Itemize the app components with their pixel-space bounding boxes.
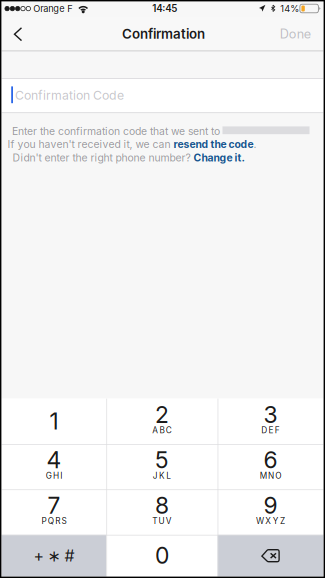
staticText: 6 bbox=[263, 446, 277, 474]
button[interactable]: Done bbox=[267, 17, 323, 50]
button[interactable]: 5 bbox=[106, 444, 218, 489]
button[interactable]: Confirmation Code bbox=[15, 88, 124, 103]
staticText: resend the code bbox=[173, 138, 253, 150]
button[interactable]: Change it. bbox=[193, 151, 244, 164]
staticText bbox=[190, 151, 193, 164]
staticText: 5 bbox=[155, 446, 169, 474]
button[interactable]: Back bbox=[2, 18, 44, 51]
staticText: 2 bbox=[155, 401, 169, 428]
staticText: Change it. bbox=[193, 151, 244, 164]
staticText: . bbox=[253, 138, 256, 150]
staticText bbox=[170, 138, 173, 150]
button[interactable]: 0 bbox=[106, 535, 218, 577]
button[interactable]: 9 bbox=[218, 489, 323, 535]
staticText: 0 bbox=[155, 542, 169, 569]
staticText: 14:45 bbox=[152, 3, 177, 14]
staticText: Orange F bbox=[33, 3, 72, 14]
staticText: Confirmation bbox=[122, 26, 205, 42]
staticText: TUV bbox=[149, 516, 175, 526]
staticText: + ∗ # bbox=[33, 546, 74, 565]
button[interactable]: Delete bbox=[218, 535, 323, 577]
staticText: WXYZ bbox=[253, 516, 288, 526]
button[interactable]: 2 bbox=[106, 399, 218, 444]
button[interactable]: 8 bbox=[106, 489, 218, 535]
staticText: Didn't enter the right phone number? bbox=[12, 151, 190, 164]
staticText: 7 bbox=[47, 491, 60, 519]
staticText: Confirmation Code bbox=[15, 88, 124, 103]
staticText: 4 bbox=[46, 446, 61, 474]
staticText: If you haven't received it, we can bbox=[7, 138, 170, 150]
staticText: 3 bbox=[263, 401, 277, 428]
button[interactable]: resend the code bbox=[173, 138, 253, 150]
staticText: 1 bbox=[49, 407, 58, 435]
button[interactable]: 6 bbox=[218, 444, 323, 489]
staticText: PQRS bbox=[38, 516, 70, 526]
staticText: Done bbox=[280, 26, 311, 42]
staticText: MNO bbox=[256, 471, 285, 481]
button[interactable]: 1 bbox=[2, 399, 106, 444]
staticText: GHI bbox=[42, 471, 66, 481]
staticText: ABC bbox=[149, 425, 175, 435]
staticText: DEF bbox=[258, 425, 283, 435]
button[interactable]: Symbols bbox=[2, 535, 106, 577]
staticText: Enter the confirmation code that we sent… bbox=[12, 125, 220, 138]
staticText: 8 bbox=[155, 491, 169, 519]
button[interactable]: 7 bbox=[2, 489, 106, 535]
button[interactable]: 3 bbox=[218, 399, 323, 444]
button[interactable]: 4 bbox=[2, 444, 106, 489]
staticText: JKL bbox=[149, 471, 175, 481]
staticText: 9 bbox=[263, 491, 277, 519]
staticText: 14% bbox=[280, 3, 299, 14]
